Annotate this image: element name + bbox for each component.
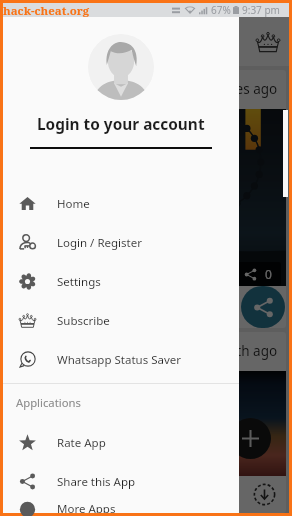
staticText: 0 <box>265 266 272 282</box>
button[interactable]: Subscribe <box>256 30 280 54</box>
button[interactable]: Home <box>3 184 239 223</box>
staticText: Settings <box>57 274 101 290</box>
button[interactable]: Login / Register <box>3 223 239 262</box>
button[interactable]: Download <box>253 483 276 506</box>
button[interactable]: Rate App <box>3 423 239 462</box>
staticText: 1 month ago <box>196 342 278 360</box>
button[interactable]: Share <box>241 286 285 328</box>
staticText: 67% <box>211 3 231 17</box>
staticText: Login / Register <box>57 235 142 251</box>
staticText: 9:37 pm <box>242 3 280 17</box>
button[interactable]: Whatsapp Status Saver <box>3 340 239 379</box>
button[interactable]: More Apps <box>3 501 239 513</box>
staticText: Whatsapp Status Saver <box>57 352 182 368</box>
button[interactable]: 1 month ago <box>6 332 286 513</box>
staticText: Subscribe <box>57 313 110 329</box>
button[interactable]: 0 <box>244 266 272 282</box>
button[interactable]: Settings <box>3 262 239 301</box>
staticText: Applications <box>16 395 81 410</box>
staticText: More Apps <box>57 501 116 513</box>
button[interactable]: Share this App <box>3 462 239 501</box>
button[interactable]: Add <box>230 418 271 459</box>
button[interactable]: 12 minutes ago <box>6 70 286 328</box>
staticText: hack-cheat.org <box>3 3 90 17</box>
staticText: Rate App <box>57 435 106 451</box>
button[interactable]: Subscribe <box>3 301 239 340</box>
staticText: Share this App <box>57 474 136 490</box>
staticText: 12 minutes ago <box>179 80 278 98</box>
staticText: Login to your account <box>37 114 205 135</box>
staticText: Home <box>57 196 90 212</box>
